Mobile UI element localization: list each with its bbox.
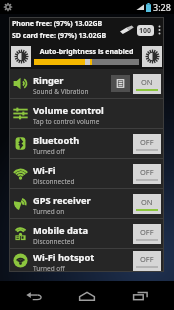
button[interactable]: Turn on <box>133 224 161 244</box>
staticText: ON <box>141 197 153 207</box>
staticText: Sound & Vibration <box>33 87 89 96</box>
other: Flashlight <box>119 24 135 36</box>
button[interactable]: Turn on <box>133 164 161 184</box>
staticText: Phone free: (97%) 13.02GB <box>12 19 103 29</box>
button[interactable]: Turn off <box>133 74 161 94</box>
button[interactable]: Volume control <box>9 99 164 128</box>
other: Settings <box>3 2 13 12</box>
button[interactable]: Ringer <box>9 69 164 98</box>
button[interactable]: Turn on <box>133 134 161 154</box>
staticText: Turned off <box>33 147 65 156</box>
staticText: SD card free: (97%) 13.02GB <box>12 31 107 41</box>
staticText: OFF <box>140 137 154 147</box>
button[interactable]: Sound profile <box>111 75 130 92</box>
button[interactable]: Recent apps <box>115 281 165 310</box>
staticText: Auto-brightness is enabled <box>34 47 139 57</box>
button[interactable]: Wi-Fi <box>9 159 164 188</box>
button[interactable]: More options <box>156 22 163 38</box>
staticText: GPS receiver <box>33 194 91 207</box>
button[interactable]: Brightness <box>142 46 162 67</box>
staticText: Bluetooth <box>33 134 80 147</box>
button[interactable]: Mobile data <box>9 219 164 248</box>
staticText: OFF <box>140 227 154 237</box>
staticText: Volume control <box>33 104 104 117</box>
staticText: Mobile data <box>33 224 89 237</box>
staticText: Disconnected <box>33 237 75 246</box>
button[interactable]: GPS receiver <box>9 189 164 218</box>
staticText: 3:28 <box>153 1 171 13</box>
staticText: OFF <box>140 167 154 177</box>
staticText: Wi-Fi <box>33 164 56 177</box>
button[interactable]: Wi-Fi hotspot <box>9 249 164 272</box>
button[interactable]: Home <box>62 281 112 310</box>
staticText: Turned on <box>33 207 65 216</box>
button[interactable]: Bluetooth <box>9 129 164 158</box>
button[interactable]: Turn off <box>133 194 161 214</box>
button[interactable]: Turn on <box>133 251 161 271</box>
staticText: Wi-Fi hotspot <box>33 251 95 264</box>
staticText: Disconnected <box>33 177 75 186</box>
staticText: Tap to control volume <box>33 117 100 126</box>
button[interactable]: Brightness <box>11 46 31 67</box>
staticText: 100 <box>139 26 152 36</box>
staticText: Ringer <box>33 74 64 87</box>
staticText: Turned off <box>33 264 65 272</box>
staticText: ON <box>141 77 153 87</box>
staticText: OFF <box>140 254 154 264</box>
button[interactable]: Back <box>9 281 59 310</box>
